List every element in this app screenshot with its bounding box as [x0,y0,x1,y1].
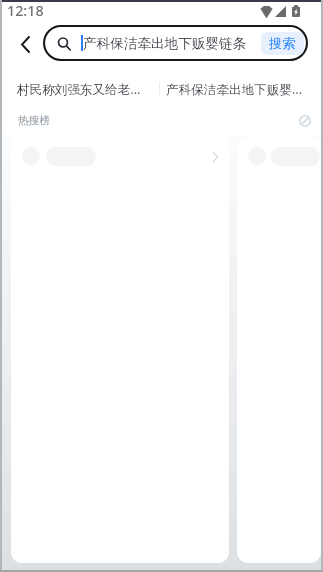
staticText: 产科保洁牵出地下贩婴... [166,81,303,98]
button[interactable]: 搜索 [261,32,304,55]
staticText: 12:18 [7,1,44,20]
button[interactable]: 产科保洁牵出地下贩婴... [159,64,323,104]
button[interactable]: 产科保洁牵出地下贩婴链条 [43,25,308,61]
staticText: 村民称刘强东又给老... [17,81,141,98]
button[interactable]: Hide hot list [295,111,315,131]
button[interactable]: 村民称刘强东又给老... [2,64,159,104]
staticText: 搜索 [269,35,296,52]
button[interactable]: Back [11,30,39,58]
staticText: 热搜榜 [18,114,50,127]
staticText: 产科保洁牵出地下贩婴链条 [83,35,261,52]
